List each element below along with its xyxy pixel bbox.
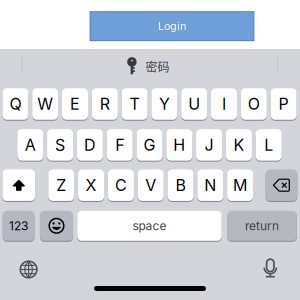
button[interactable]: L	[256, 129, 282, 161]
button[interactable]: K	[226, 129, 252, 161]
staticText: Y	[159, 94, 170, 114]
staticText: H	[173, 135, 185, 155]
button[interactable]: M	[227, 169, 253, 201]
staticText: return	[245, 218, 279, 233]
button[interactable]: Q	[2, 88, 28, 120]
button[interactable]: A	[17, 129, 43, 161]
button[interactable]: Shift	[2, 169, 35, 201]
button[interactable]: 123	[3, 210, 34, 241]
staticText: F	[115, 135, 124, 155]
staticText: O	[248, 94, 260, 114]
button[interactable]: H	[166, 129, 192, 161]
staticText: C	[115, 175, 127, 195]
button[interactable]: R	[92, 88, 118, 120]
staticText: Login	[158, 20, 186, 33]
staticText: K	[233, 135, 244, 155]
button[interactable]: Next keyboard	[12, 254, 46, 284]
button[interactable]: O	[241, 88, 267, 120]
button[interactable]: B	[167, 169, 193, 201]
button[interactable]: 密码	[128, 54, 169, 78]
staticText: W	[37, 94, 53, 114]
staticText: N	[204, 175, 216, 195]
button[interactable]: J	[196, 129, 222, 161]
button[interactable]: Delete	[265, 169, 297, 201]
button[interactable]: Emoji	[40, 210, 73, 241]
button[interactable]: D	[77, 129, 103, 161]
staticText: Z	[56, 175, 66, 195]
staticText: S	[55, 135, 65, 155]
button[interactable]: C	[108, 169, 134, 201]
staticText: M	[233, 175, 247, 195]
staticText: D	[84, 135, 96, 155]
staticText: 密码	[145, 58, 169, 75]
staticText: Q	[9, 94, 21, 114]
staticText: B	[175, 175, 185, 195]
button[interactable]: Y	[151, 88, 177, 120]
button[interactable]: W	[32, 88, 58, 120]
button[interactable]: G	[136, 129, 162, 161]
button[interactable]: F	[107, 129, 133, 161]
staticText: P	[279, 94, 289, 114]
button[interactable]: I	[211, 88, 237, 120]
button[interactable]: U	[181, 88, 207, 120]
button[interactable]: return	[227, 210, 297, 241]
staticText: I	[222, 94, 226, 114]
staticText: T	[130, 94, 140, 114]
button[interactable]: space	[77, 210, 222, 241]
button[interactable]: S	[47, 129, 73, 161]
button[interactable]: Dictation	[253, 254, 287, 284]
staticText: R	[100, 94, 110, 114]
staticText: V	[145, 175, 156, 195]
button[interactable]: T	[122, 88, 148, 120]
button[interactable]: X	[78, 169, 104, 201]
staticText: J	[205, 135, 214, 155]
staticText: A	[25, 135, 36, 155]
staticText: space	[132, 218, 166, 233]
button[interactable]: E	[62, 88, 88, 120]
button[interactable]: N	[197, 169, 223, 201]
button[interactable]: Z	[48, 169, 74, 201]
button[interactable]: V	[138, 169, 164, 201]
staticText: G	[143, 135, 155, 155]
button[interactable]: Login	[90, 11, 254, 41]
staticText: U	[188, 94, 200, 114]
staticText: 123	[9, 218, 28, 233]
staticText: E	[70, 94, 80, 114]
staticText: L	[264, 135, 273, 155]
button[interactable]: P	[271, 88, 297, 120]
staticText: X	[86, 175, 97, 195]
